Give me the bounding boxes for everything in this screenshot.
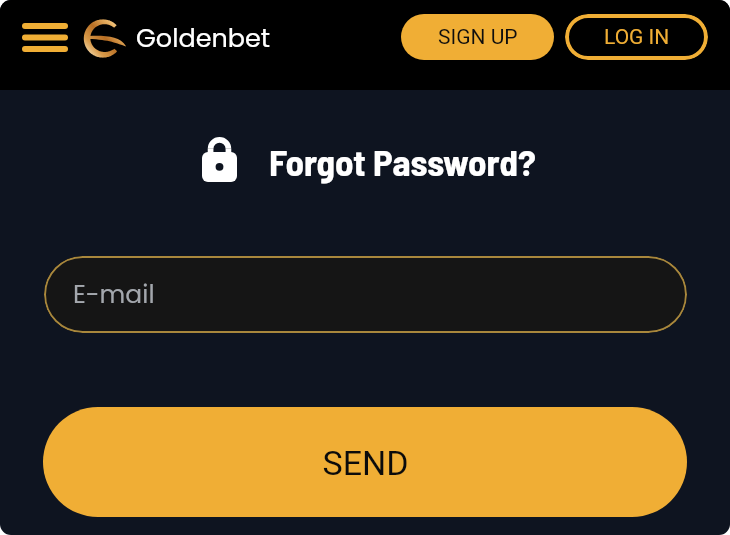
staticText: LOG IN <box>604 25 670 50</box>
staticText: SIGN UP <box>438 25 518 50</box>
button[interactable]: Menu <box>12 7 78 67</box>
button[interactable]: SEND <box>43 407 687 517</box>
button[interactable]: LOG IN <box>565 14 708 60</box>
staticText: E-mail <box>73 277 155 312</box>
button[interactable]: SIGN UP <box>401 14 554 60</box>
button[interactable]: E-mail <box>44 256 687 333</box>
staticText: SEND <box>322 443 409 483</box>
staticText: Forgot Password? <box>269 139 536 183</box>
staticText: Goldenbet <box>136 20 271 56</box>
